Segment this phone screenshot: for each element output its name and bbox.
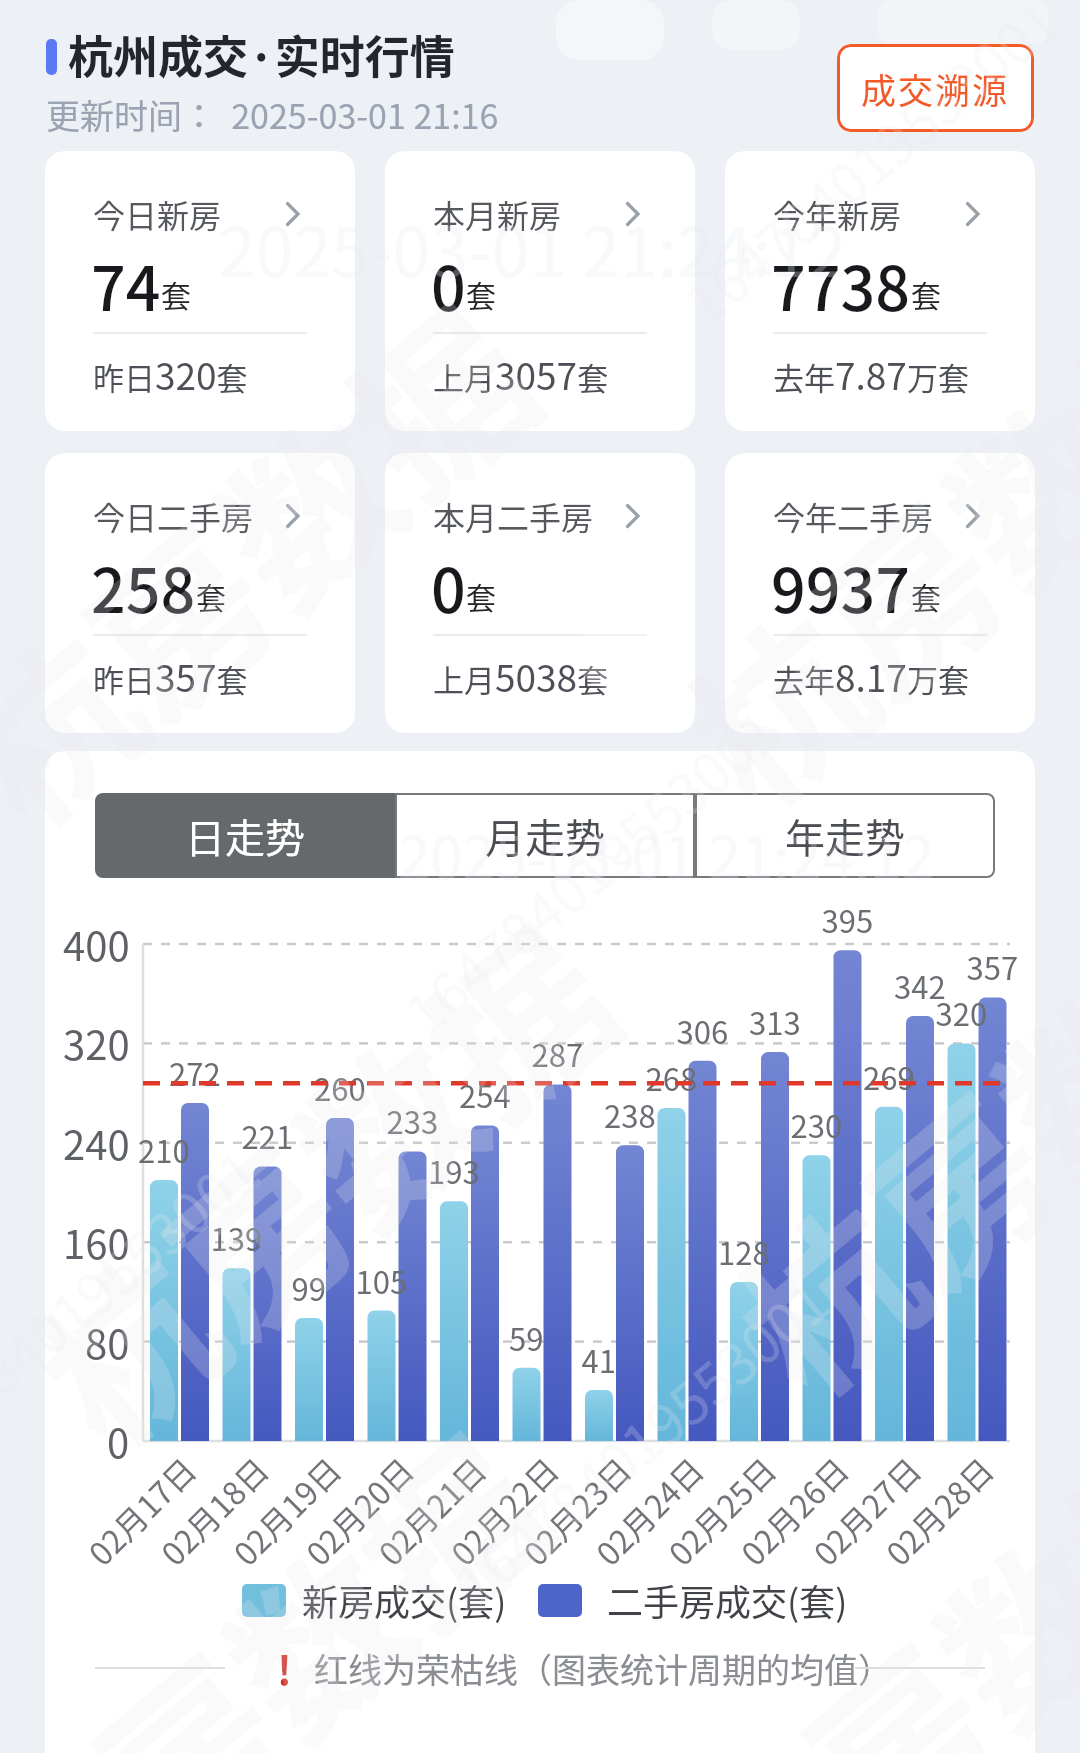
- button[interactable]: 今年二手房: [725, 453, 1035, 733]
- staticText: 更新时间： 2025-03-01 21:16: [46, 90, 499, 139]
- staticText: 套: [911, 574, 941, 617]
- staticText: 年走势: [785, 807, 905, 865]
- button[interactable]: 月走势: [395, 793, 695, 878]
- button[interactable]: 日走势: [95, 793, 395, 878]
- staticText: 74: [91, 240, 161, 328]
- staticText: 今日新房: [93, 191, 222, 237]
- button[interactable]: 年走势: [695, 793, 995, 878]
- staticText: 成交溯源: [861, 63, 1010, 114]
- staticText: 昨日357套: [93, 649, 248, 703]
- button[interactable]: 今日二手房: [45, 453, 355, 733]
- staticText: 去年7.87万套: [773, 347, 969, 401]
- staticText: 套: [911, 272, 941, 315]
- staticText: 月走势: [485, 807, 605, 865]
- button[interactable]: 本月二手房: [385, 453, 695, 733]
- staticText: 昨日320套: [93, 347, 248, 401]
- staticText: 今年新房: [773, 191, 902, 237]
- staticText: 0: [431, 542, 466, 630]
- staticText: 套: [196, 574, 226, 617]
- staticText: 套: [466, 272, 496, 315]
- staticText: 套: [466, 574, 496, 617]
- button[interactable]: 今年新房: [725, 151, 1035, 431]
- staticText: 9937: [771, 542, 911, 630]
- staticText: 去年8.17万套: [773, 649, 969, 703]
- staticText: 套: [161, 272, 191, 315]
- staticText: 本月二手房: [433, 493, 594, 539]
- staticText: 7738: [771, 240, 911, 328]
- staticText: 0: [431, 240, 466, 328]
- staticText: 上月3057套: [433, 347, 609, 401]
- staticText: 日走势: [185, 807, 305, 865]
- staticText: 今日二手房: [93, 493, 254, 539]
- button[interactable]: 成交溯源: [837, 44, 1034, 132]
- staticText: 今年二手房: [773, 493, 934, 539]
- button[interactable]: 今日新房: [45, 151, 355, 431]
- staticText: 上月5038套: [433, 649, 609, 703]
- button[interactable]: 本月新房: [385, 151, 695, 431]
- staticText: 本月新房: [433, 191, 562, 237]
- staticText: 杭州成交·实时行情: [68, 22, 455, 87]
- staticText: 258: [91, 542, 196, 630]
